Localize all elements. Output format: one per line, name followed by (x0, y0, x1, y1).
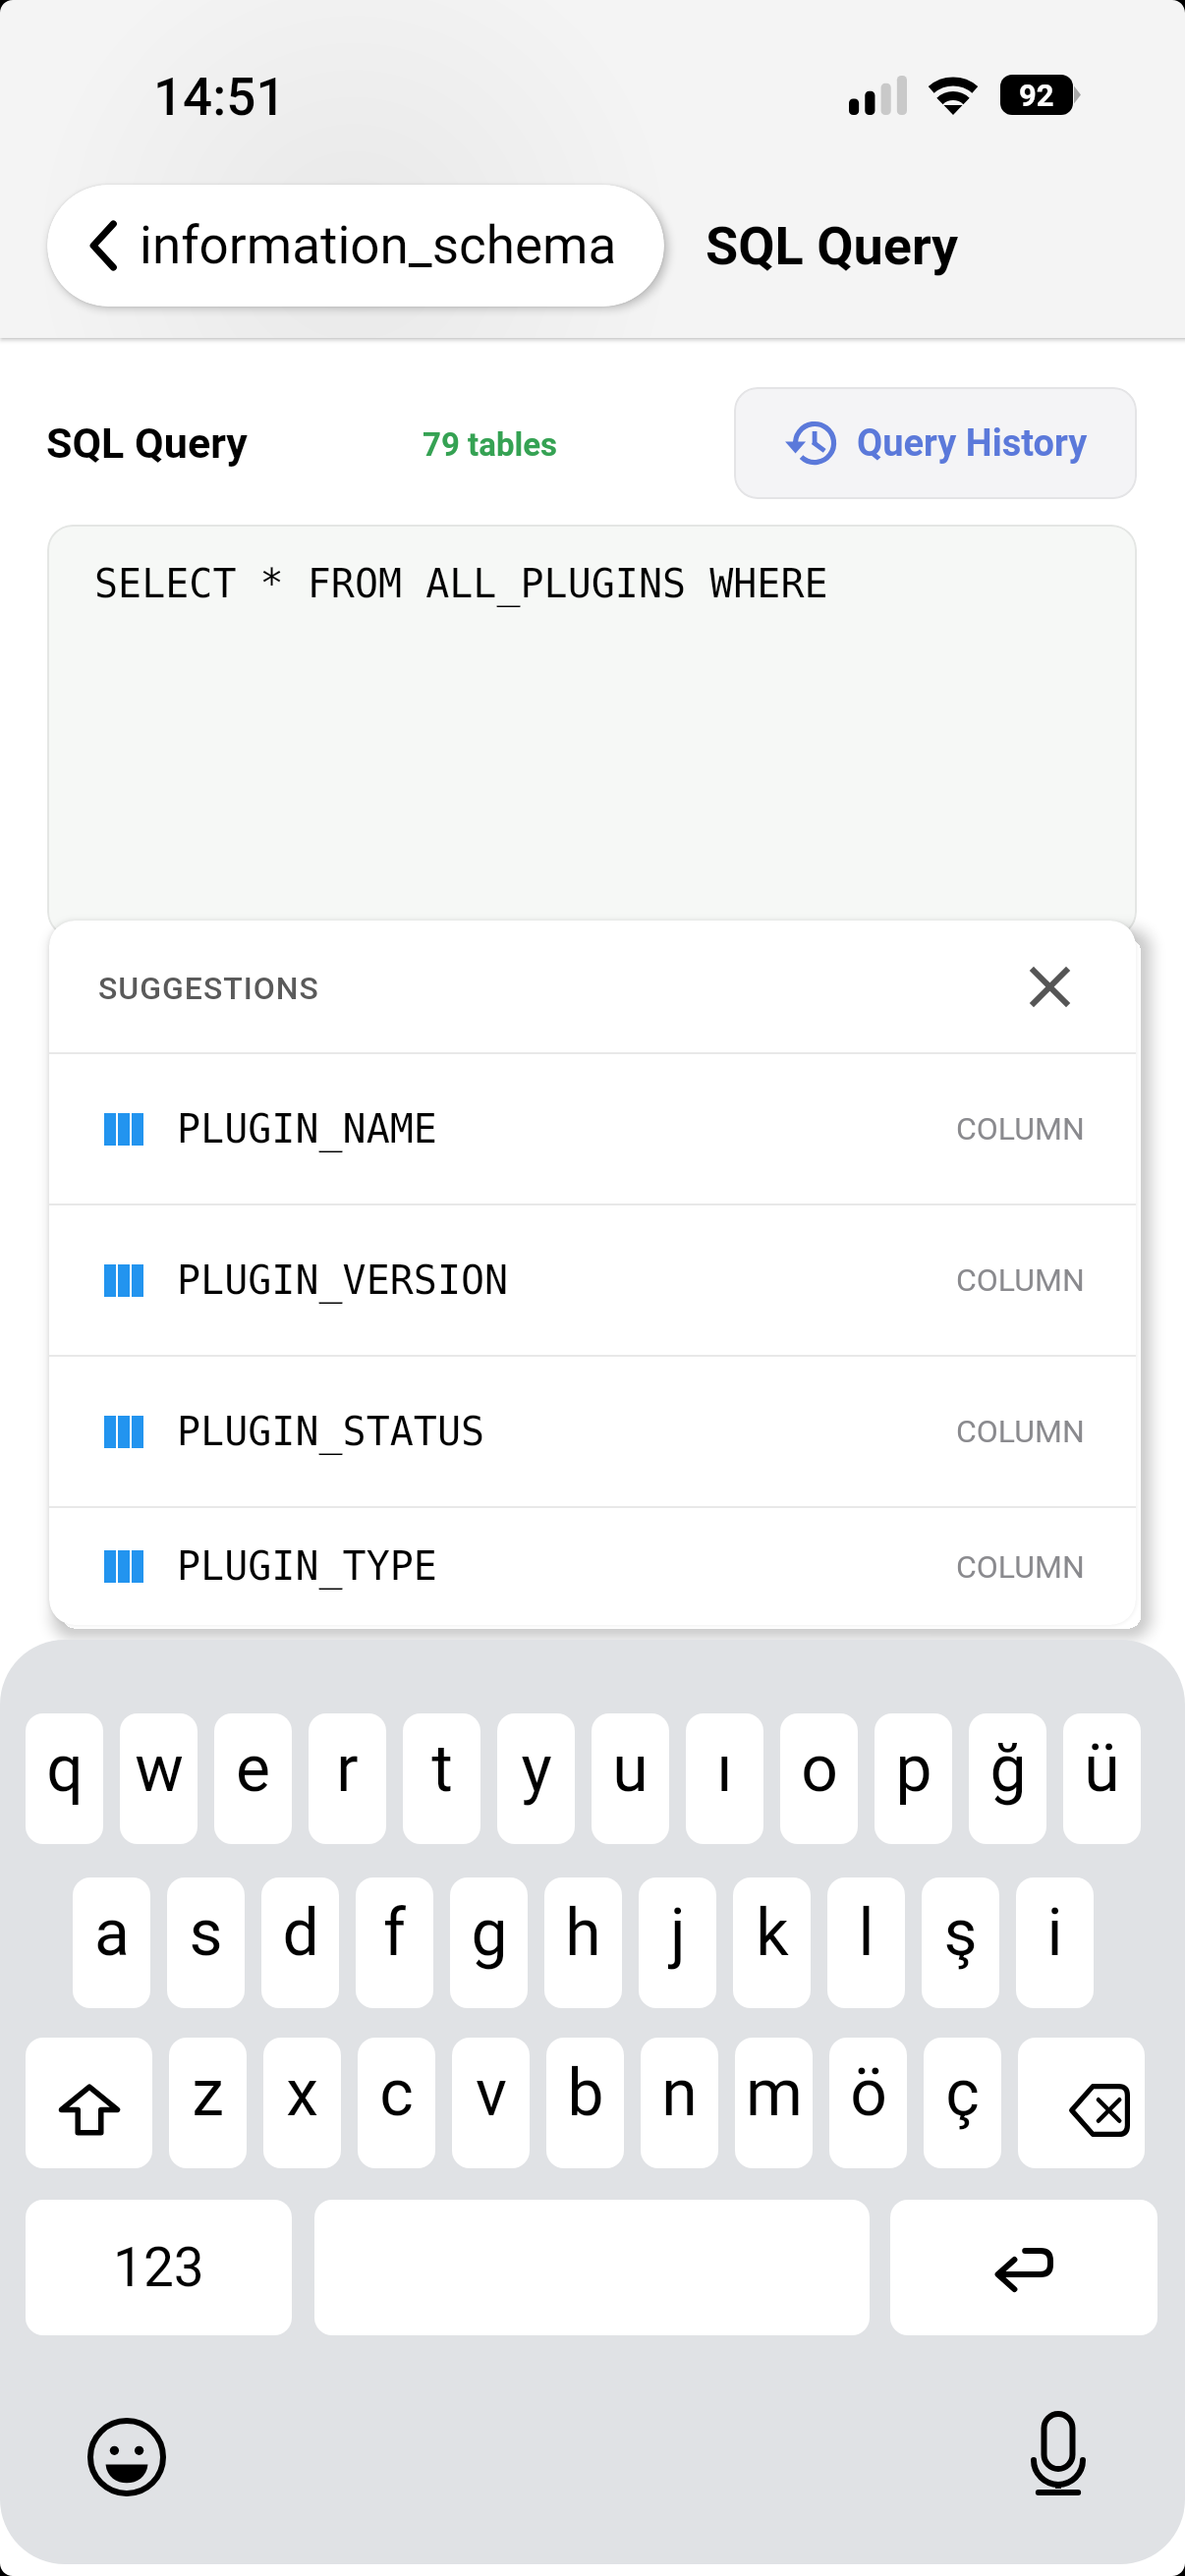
button[interactable]: o (780, 1713, 858, 1844)
button[interactable]: PLUGIN_VERSION (49, 1205, 1136, 1355)
button[interactable]: f (356, 1877, 433, 2008)
staticText: h (565, 1895, 601, 1971)
staticText: 14:51 (153, 67, 286, 128)
button[interactable]: PLUGIN_STATUS (49, 1357, 1136, 1506)
button[interactable]: u (592, 1713, 669, 1844)
button[interactable]: b (546, 2038, 624, 2168)
button[interactable]: y (497, 1713, 575, 1844)
staticText: 123 (113, 2236, 204, 2299)
staticText: f (383, 1895, 406, 1971)
button[interactable]: t (403, 1713, 480, 1844)
button[interactable]: l (827, 1877, 905, 2008)
staticText: q (46, 1731, 84, 1807)
button[interactable]: Emoji (85, 2415, 169, 2499)
staticText: u (612, 1731, 649, 1807)
staticText: t (431, 1731, 453, 1807)
staticText: PLUGIN_STATUS (177, 1409, 485, 1455)
button[interactable]: Query History (734, 387, 1137, 499)
staticText: n (661, 2055, 698, 2131)
button[interactable]: Close suggestions (1015, 952, 1084, 1021)
staticText: PLUGIN_VERSION (177, 1258, 509, 1304)
button[interactable]: s (167, 1877, 245, 2008)
staticText: ö (850, 2055, 887, 2131)
staticText: ş (943, 1895, 978, 1971)
button[interactable]: Dictate (1016, 2411, 1100, 2495)
button[interactable]: Shift (26, 2038, 152, 2168)
staticText: ü (1084, 1731, 1120, 1807)
button[interactable]: PLUGIN_TYPE (49, 1508, 1136, 1625)
button[interactable]: ı (686, 1713, 763, 1844)
staticText: l (858, 1895, 875, 1971)
button[interactable]: ğ (969, 1713, 1046, 1844)
staticText: s (189, 1895, 223, 1971)
staticText: g (471, 1895, 508, 1971)
staticText: COLUMN (956, 1110, 1085, 1148)
staticText: SQL Query (46, 419, 248, 468)
staticText: ğ (989, 1731, 1027, 1807)
staticText: z (192, 2055, 224, 2131)
staticText: 79 tables (423, 425, 558, 464)
button[interactable]: q (26, 1713, 103, 1844)
button[interactable]: 123 (26, 2200, 292, 2335)
staticText: k (756, 1895, 789, 1971)
button[interactable]: i (1016, 1877, 1094, 2008)
staticText: j (670, 1895, 686, 1971)
staticText: y (521, 1731, 552, 1807)
staticText: m (746, 2055, 803, 2131)
button[interactable]: z (169, 2038, 247, 2168)
staticText: Query History (857, 421, 1088, 466)
button[interactable]: ü (1063, 1713, 1141, 1844)
staticText: w (135, 1731, 184, 1807)
button[interactable]: ö (829, 2038, 907, 2168)
staticText: x (286, 2055, 318, 2131)
button[interactable]: m (735, 2038, 813, 2168)
staticText: PLUGIN_TYPE (177, 1543, 437, 1590)
button[interactable]: ç (924, 2038, 1001, 2168)
button[interactable]: v (452, 2038, 530, 2168)
staticText: a (94, 1895, 130, 1971)
staticText: PLUGIN_NAME (177, 1106, 437, 1152)
button[interactable]: c (358, 2038, 435, 2168)
staticText: p (895, 1731, 932, 1807)
button[interactable]: Backspace (1018, 2038, 1145, 2168)
staticText: v (476, 2055, 507, 2131)
staticText: ı (716, 1731, 733, 1807)
button[interactable]: p (875, 1713, 952, 1844)
staticText: c (379, 2055, 414, 2131)
staticText: i (1046, 1895, 1063, 1971)
staticText: SELECT * FROM ALL_PLUGINS WHERE (94, 561, 828, 607)
staticText: SUGGESTIONS (98, 970, 319, 1007)
staticText: d (282, 1895, 319, 1971)
button[interactable]: ş (922, 1877, 999, 2008)
staticText: COLUMN (956, 1261, 1085, 1299)
button[interactable]: PLUGIN_NAME (49, 1054, 1136, 1204)
staticText: r (336, 1731, 359, 1807)
button[interactable]: Return (890, 2200, 1157, 2335)
staticText: COLUMN (956, 1548, 1085, 1586)
button[interactable]: h (544, 1877, 622, 2008)
button[interactable]: r (309, 1713, 386, 1844)
button[interactable]: d (261, 1877, 339, 2008)
button[interactable]: k (733, 1877, 811, 2008)
staticText: COLUMN (956, 1413, 1085, 1450)
staticText: SQL Query (705, 215, 959, 277)
staticText: ç (945, 2055, 980, 2131)
staticText: 92 (1019, 78, 1054, 113)
button[interactable]: information_schema (47, 185, 664, 307)
button[interactable]: w (120, 1713, 197, 1844)
staticText: o (801, 1731, 838, 1807)
button[interactable]: e (214, 1713, 292, 1844)
staticText: information_schema (140, 215, 617, 276)
button[interactable]: j (639, 1877, 716, 2008)
button[interactable]: a (73, 1877, 150, 2008)
staticText: e (236, 1731, 270, 1807)
button[interactable]: x (263, 2038, 341, 2168)
button[interactable]: g (450, 1877, 528, 2008)
button[interactable]: n (641, 2038, 718, 2168)
staticText: b (567, 2055, 604, 2131)
